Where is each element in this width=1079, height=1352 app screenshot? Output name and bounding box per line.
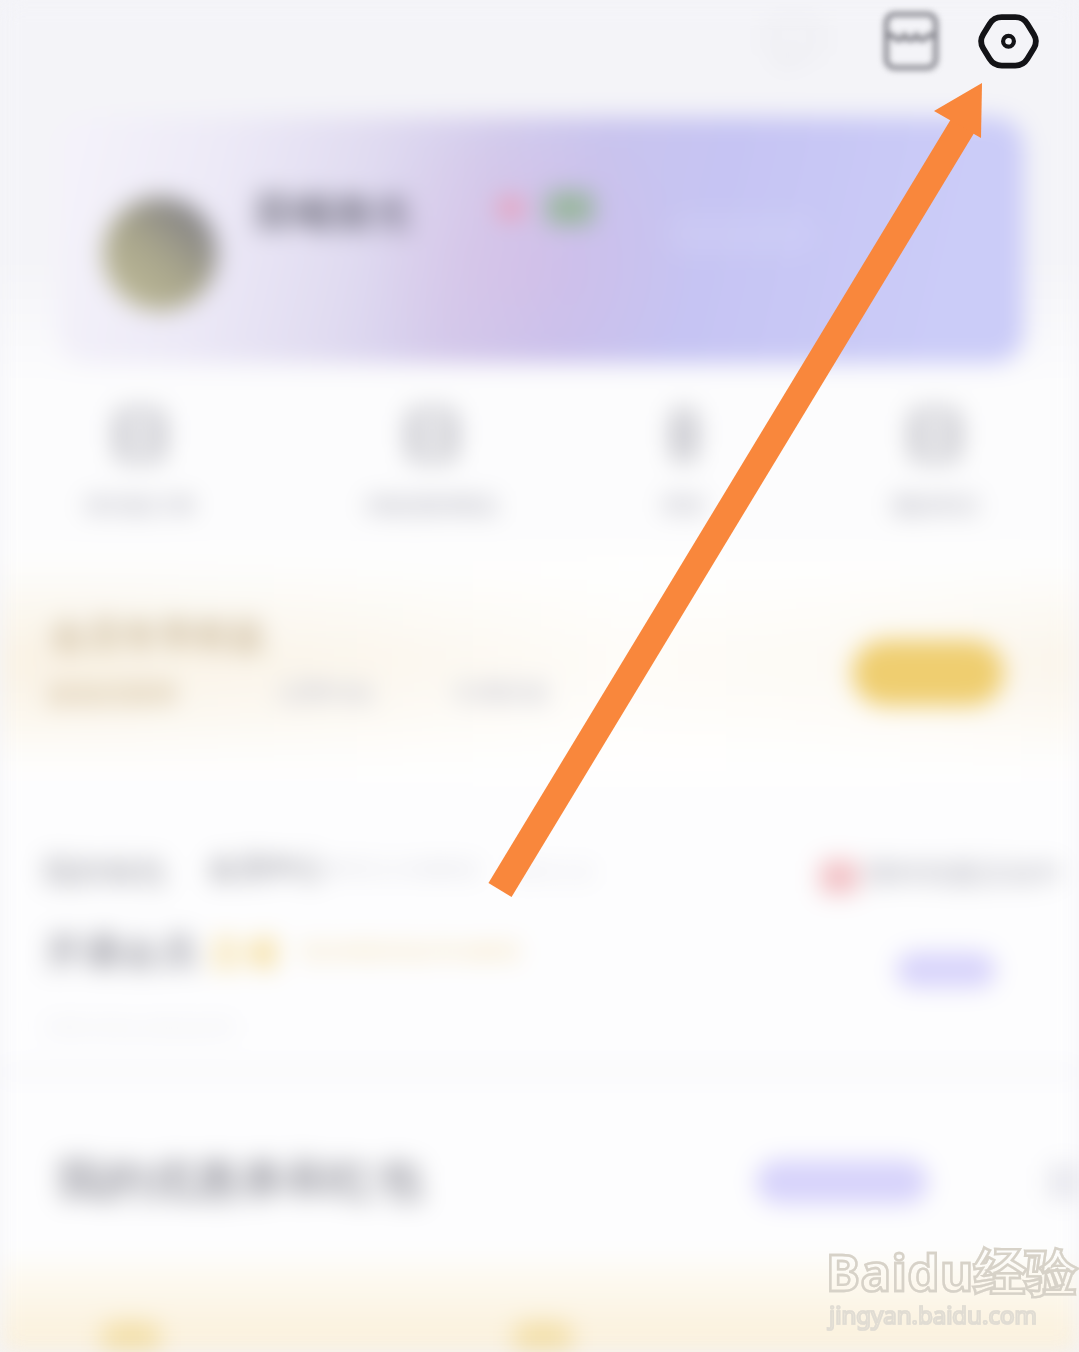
- staticText: 开通会员: [45, 928, 197, 976]
- button[interactable]: 退款售后: [855, 398, 1015, 528]
- staticText: 待收货的商品: [366, 492, 498, 520]
- staticText: 超值优惠券: [48, 678, 178, 711]
- button[interactable]: Profile: [57, 117, 1024, 363]
- button[interactable]: Details: [756, 1160, 928, 1204]
- button[interactable]: Store: [876, 6, 946, 76]
- staticText: jingyan.baidu.com: [829, 1298, 1037, 1331]
- staticText: 我的优惠券和红包: [56, 1152, 424, 1210]
- staticText: 限时立省: [513, 860, 593, 885]
- staticText: 立省: [208, 930, 280, 975]
- button[interactable]: Settings: [974, 6, 1044, 76]
- staticText: 会员中心: [208, 850, 324, 887]
- button[interactable]: 待收货的商品: [352, 398, 512, 528]
- button[interactable]: My orders: [0, 578, 1079, 783]
- staticText: 限时特惠活动中: [866, 856, 1062, 891]
- staticText: 会员专享权益: [50, 612, 266, 657]
- button[interactable]: Coupons: [0, 1076, 1079, 1258]
- button[interactable]: 待付款订单: [60, 398, 220, 528]
- staticText: 晨曦微光: [252, 187, 412, 237]
- staticText: Baidu经验: [826, 1236, 1077, 1306]
- button[interactable]: 评价: [604, 398, 764, 528]
- staticText: 退款售后: [891, 492, 979, 520]
- button[interactable]: Sign in: [852, 640, 1004, 706]
- button[interactable]: Renew: [896, 952, 996, 988]
- staticText: 我的钱包: [42, 852, 166, 891]
- button[interactable]: Membership: [0, 783, 1079, 1068]
